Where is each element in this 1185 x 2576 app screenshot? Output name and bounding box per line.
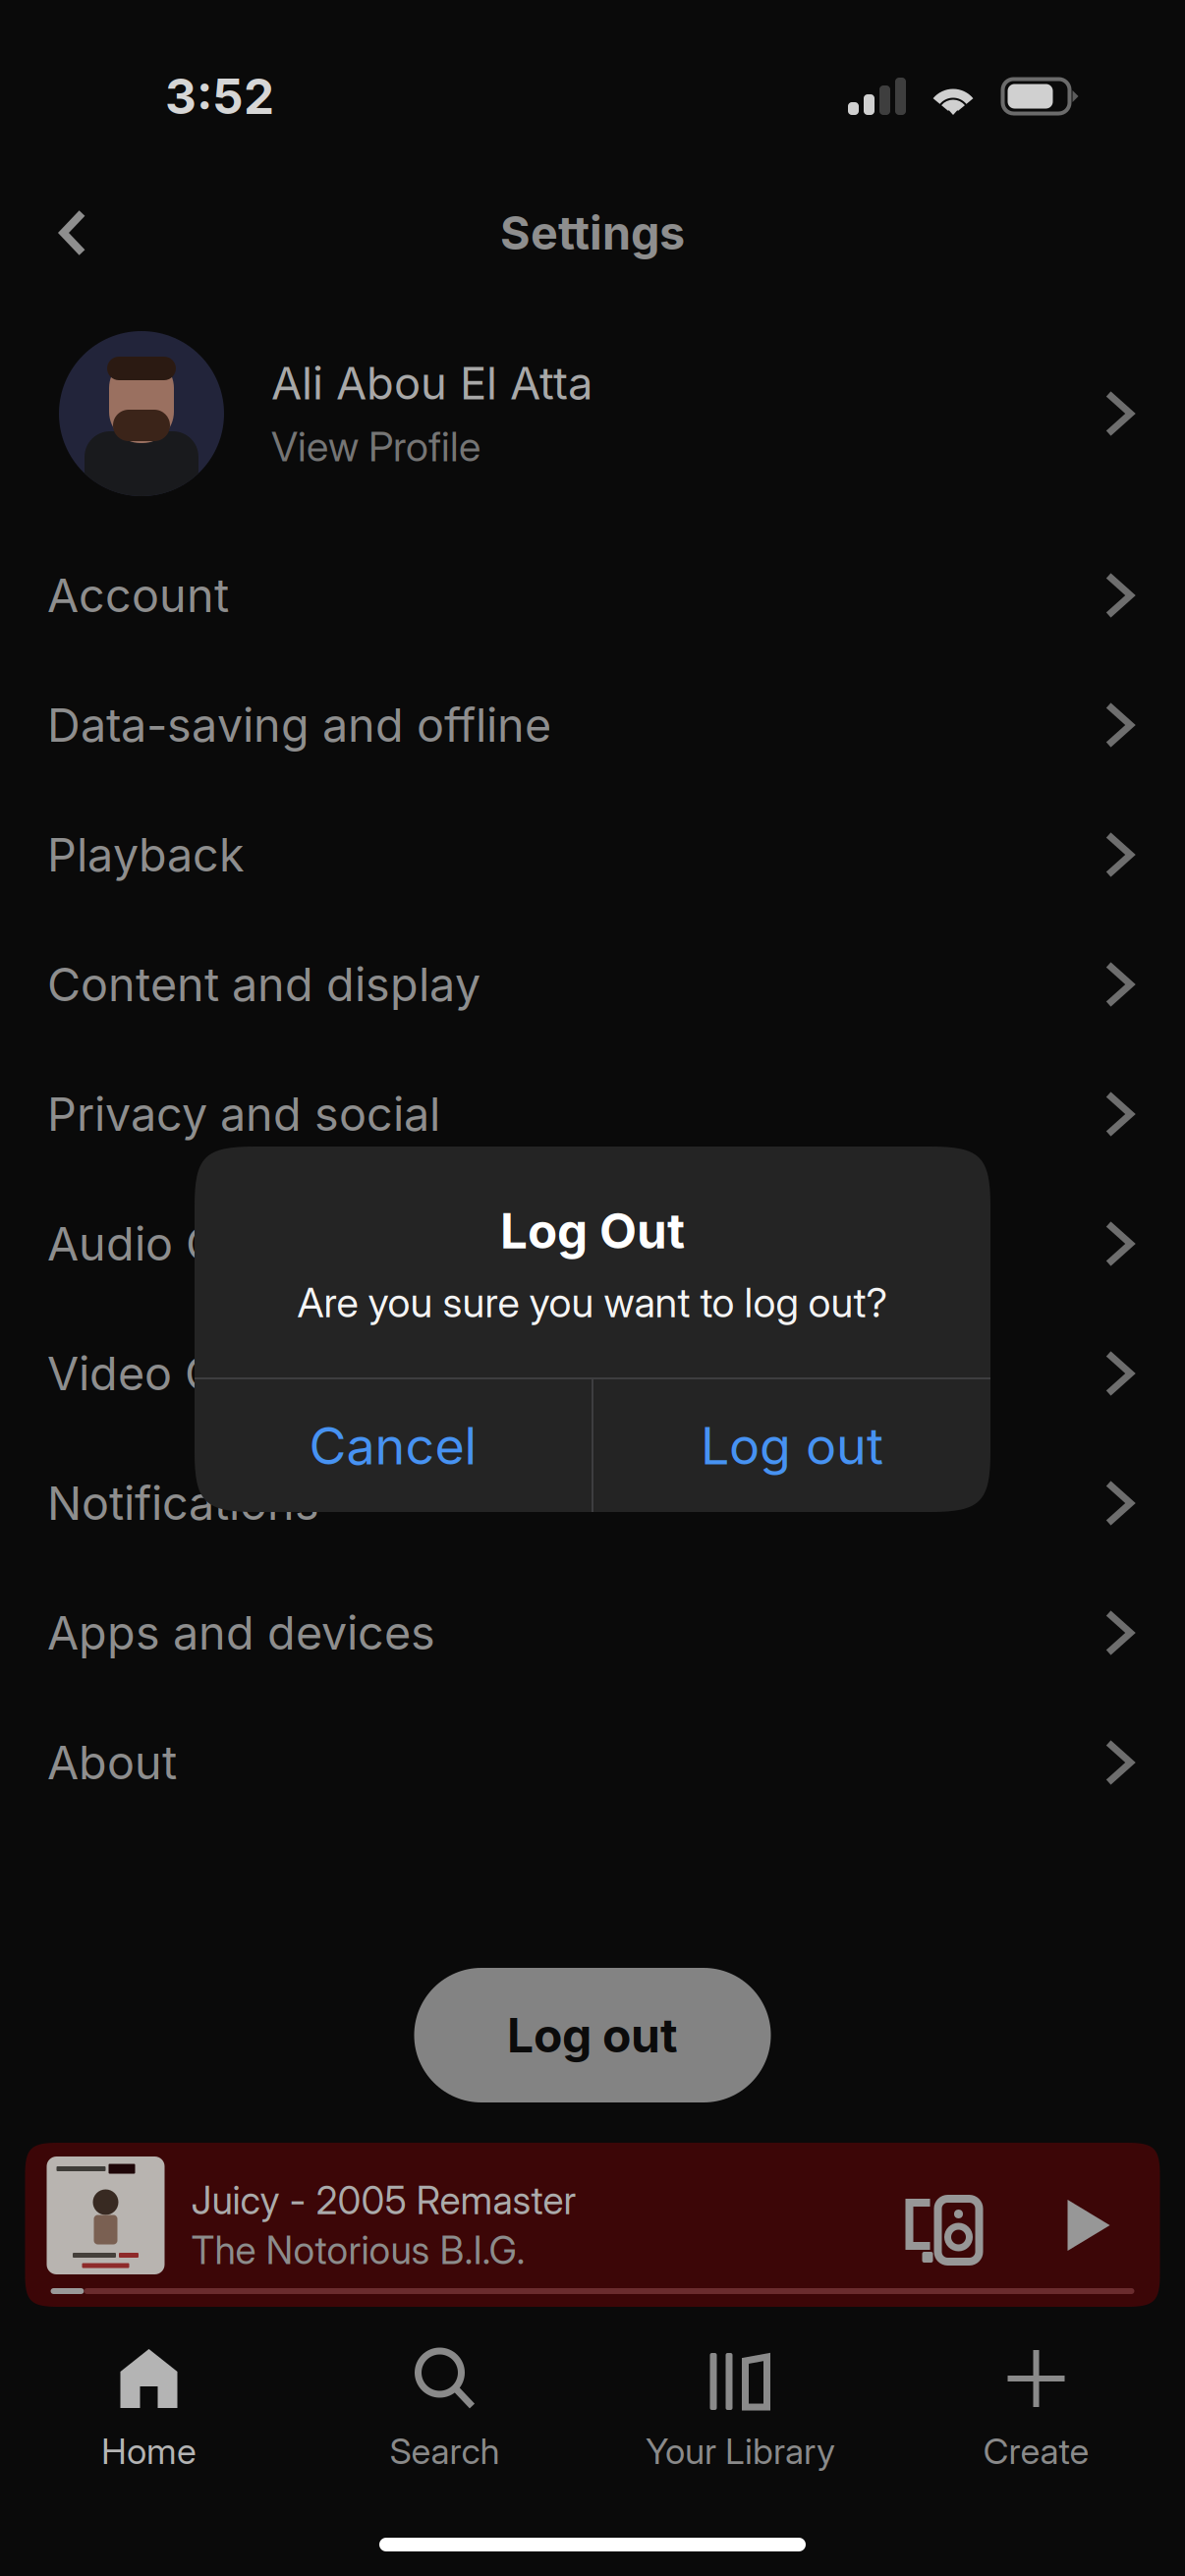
staticText: Privacy and social <box>47 1086 440 1142</box>
staticText: Your Library <box>646 2430 835 2472</box>
button[interactable]: Back <box>33 194 112 272</box>
staticText: Create <box>983 2430 1089 2472</box>
staticText: Data-saving and offline <box>47 697 551 753</box>
button[interactable]: Juicy - 2005 Remaster <box>25 2143 1160 2307</box>
button[interactable]: Video Quality <box>0 1309 1185 1438</box>
staticText: Account <box>47 568 229 623</box>
staticText: Log out <box>701 1415 883 1477</box>
staticText: Playback <box>47 827 245 883</box>
staticText: Video Quality <box>47 1346 336 1401</box>
staticText: Juicy - 2005 Remaster <box>191 2177 576 2223</box>
staticText: About <box>47 1735 177 1790</box>
staticText: Audio Quality <box>47 1216 337 1272</box>
button[interactable]: Create <box>888 2340 1184 2483</box>
staticText: Content and display <box>47 957 480 1012</box>
staticText: View Profile <box>271 422 480 471</box>
button[interactable]: Data-saving and offline <box>0 660 1185 790</box>
staticText: Are you sure you want to log out? <box>297 1278 888 1327</box>
button[interactable]: Cancel <box>195 1379 592 1512</box>
button[interactable]: Notifications <box>0 1438 1185 1568</box>
button[interactable]: Log out <box>593 1379 990 1512</box>
button[interactable]: Content and display <box>0 920 1185 1049</box>
button[interactable]: Privacy and social <box>0 1049 1185 1179</box>
staticText: Log out <box>507 2007 678 2064</box>
staticText: Ali Abou El Atta <box>271 356 592 410</box>
button[interactable]: Account <box>0 531 1185 660</box>
staticText: The Notorious B.I.G. <box>191 2227 525 2273</box>
button[interactable]: Ali Abou El Atta <box>0 308 1185 519</box>
staticText: Search <box>390 2430 500 2472</box>
button[interactable]: Log out <box>414 1968 771 2102</box>
button[interactable]: Your Library <box>592 2340 888 2483</box>
staticText: Apps and devices <box>47 1605 435 1661</box>
button[interactable]: Play <box>1068 2180 1110 2251</box>
button[interactable]: Home <box>1 2340 297 2483</box>
staticText: Log Out <box>500 1202 685 1260</box>
button[interactable]: About <box>0 1698 1185 1827</box>
button[interactable]: Search <box>297 2340 592 2483</box>
button[interactable]: Playback <box>0 790 1185 920</box>
staticText: 3:52 <box>165 67 274 126</box>
button[interactable]: Apps and devices <box>0 1568 1185 1698</box>
button[interactable]: Audio Quality <box>0 1179 1185 1309</box>
staticText: Cancel <box>309 1415 477 1477</box>
staticText: Settings <box>500 205 685 261</box>
button[interactable]: Connect to a device <box>904 2163 979 2268</box>
staticText: Home <box>101 2430 197 2472</box>
staticText: Notifications <box>47 1475 319 1531</box>
